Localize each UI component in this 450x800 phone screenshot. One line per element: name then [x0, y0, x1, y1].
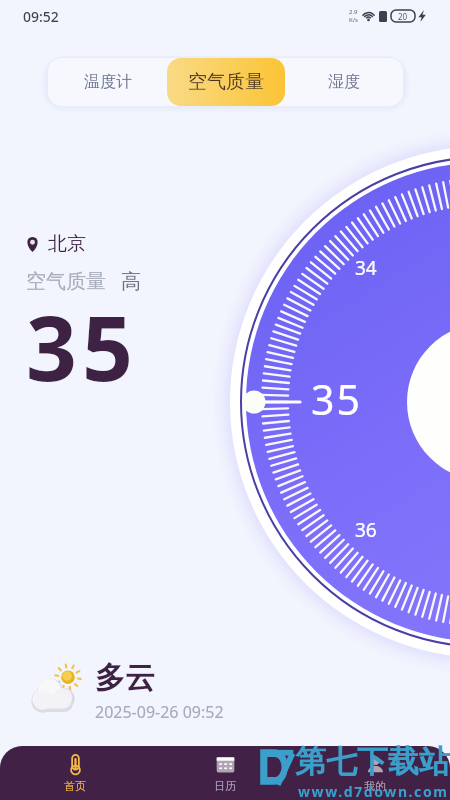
- staticText: 第七下载站: [295, 742, 450, 781]
- staticText: 空气质量: [188, 70, 264, 94]
- staticText: 09:52: [23, 7, 59, 26]
- staticText: 35: [311, 371, 362, 427]
- staticText: 2.9: [349, 8, 358, 16]
- button[interactable]: 空气质量: [167, 58, 285, 106]
- staticText: www.d7down.com: [298, 782, 449, 800]
- staticText: 20: [398, 11, 408, 22]
- button[interactable]: 温度计: [48, 58, 167, 106]
- staticText: 我的: [364, 779, 386, 793]
- staticText: 多云: [95, 659, 155, 697]
- staticText: 2025-09-26 09:52: [95, 701, 224, 723]
- staticText: 温度计: [84, 72, 132, 92]
- staticText: 35: [26, 286, 138, 407]
- staticText: 湿度: [328, 72, 360, 92]
- staticText: 日历: [214, 779, 236, 793]
- staticText: 首页: [64, 779, 86, 793]
- staticText: 36: [355, 517, 377, 543]
- button[interactable]: 我的: [300, 746, 450, 800]
- staticText: 高: [121, 269, 141, 294]
- staticText: 空气质量: [26, 269, 106, 294]
- button[interactable]: 湿度: [285, 58, 403, 106]
- staticText: 北京: [48, 232, 86, 256]
- staticText: K/s: [349, 16, 358, 24]
- button[interactable]: 日历: [150, 746, 300, 800]
- button[interactable]: 首页: [0, 746, 150, 800]
- staticText: 34: [355, 255, 377, 281]
